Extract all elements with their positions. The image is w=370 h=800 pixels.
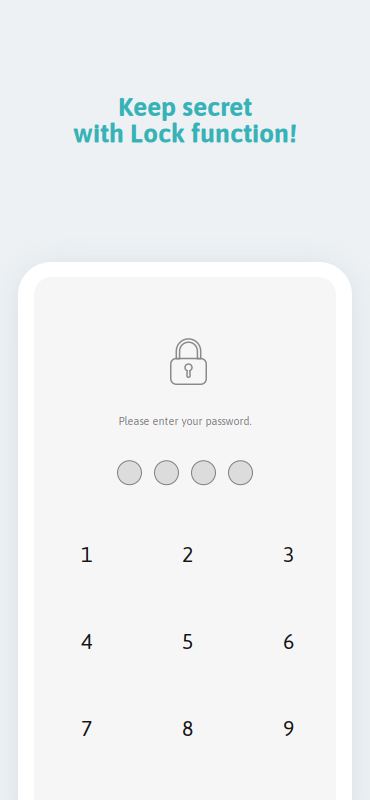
button[interactable]: 1 bbox=[46, 516, 126, 592]
staticText: Keep secret bbox=[118, 91, 252, 122]
button[interactable]: 8 bbox=[147, 690, 227, 766]
button[interactable]: 9 bbox=[248, 690, 328, 766]
button[interactable]: 6 bbox=[248, 603, 328, 679]
button[interactable]: 7 bbox=[46, 690, 126, 766]
button[interactable]: 3 bbox=[248, 516, 328, 592]
staticText: 4 bbox=[81, 629, 92, 653]
staticText: 8 bbox=[182, 716, 193, 740]
staticText: 7 bbox=[81, 716, 92, 740]
button[interactable]: 4 bbox=[46, 603, 126, 679]
button[interactable]: 5 bbox=[147, 603, 227, 679]
staticText: 9 bbox=[283, 716, 294, 740]
staticText: 5 bbox=[182, 629, 193, 653]
staticText: 1 bbox=[81, 542, 92, 566]
staticText: 2 bbox=[182, 542, 193, 566]
staticText: Please enter your password. bbox=[118, 415, 251, 427]
staticText: with Lock function! bbox=[73, 118, 297, 148]
staticText: 6 bbox=[283, 629, 294, 653]
button[interactable]: 2 bbox=[147, 516, 227, 592]
staticText: 3 bbox=[283, 542, 294, 566]
